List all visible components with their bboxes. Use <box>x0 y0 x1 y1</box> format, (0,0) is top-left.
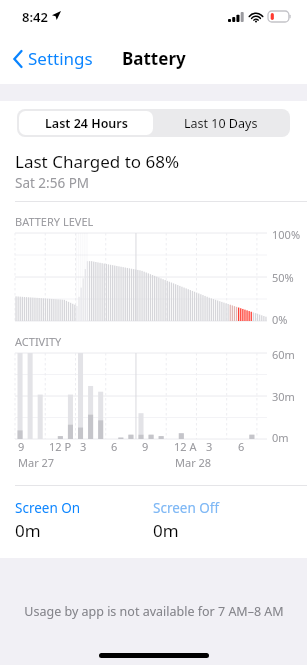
staticText: 0m <box>15 519 41 542</box>
staticText: Last 24 Hours <box>45 115 128 132</box>
staticText: Settings <box>28 47 93 70</box>
button[interactable]: Last 10 Days <box>153 111 288 135</box>
staticText: 0% <box>272 312 288 327</box>
staticText: 8:42 <box>22 8 48 26</box>
staticText: Last 10 Days <box>184 115 258 132</box>
staticText: 9 <box>142 439 149 454</box>
staticText: BATTERY LEVEL <box>15 214 94 229</box>
staticText: 6 <box>111 439 118 454</box>
other: Home indicator <box>0 637 307 665</box>
staticText: 60m <box>272 347 295 362</box>
staticText: Mar 28 <box>175 455 212 470</box>
button[interactable]: Last 24 Hours <box>19 111 153 135</box>
button[interactable]: Screen On <box>15 499 153 542</box>
staticText: 100% <box>272 227 301 242</box>
staticText: 3 <box>80 439 87 454</box>
staticText: 50% <box>272 270 294 285</box>
staticText: 3 <box>206 439 213 454</box>
staticText: Usage by app is not available for 7 AM–8… <box>24 603 284 620</box>
staticText: ACTIVITY <box>15 334 62 349</box>
staticText: 6 <box>238 439 245 454</box>
staticText: Battery <box>122 47 186 70</box>
staticText: 12 P <box>49 439 72 454</box>
staticText: Mar 27 <box>18 455 55 470</box>
staticText: 9 <box>18 439 25 454</box>
staticText: 0m <box>153 519 179 542</box>
staticText: Last Charged to 68% <box>15 150 180 173</box>
button[interactable]: Settings <box>8 40 98 77</box>
staticText: 0m <box>272 430 289 445</box>
staticText: 30m <box>272 389 295 404</box>
staticText: Sat 2:56 PM <box>15 174 90 192</box>
staticText: Screen On <box>15 499 81 517</box>
button[interactable]: Screen Off <box>153 499 292 542</box>
staticText: 12 A <box>174 439 197 454</box>
staticText: Screen Off <box>153 499 220 517</box>
